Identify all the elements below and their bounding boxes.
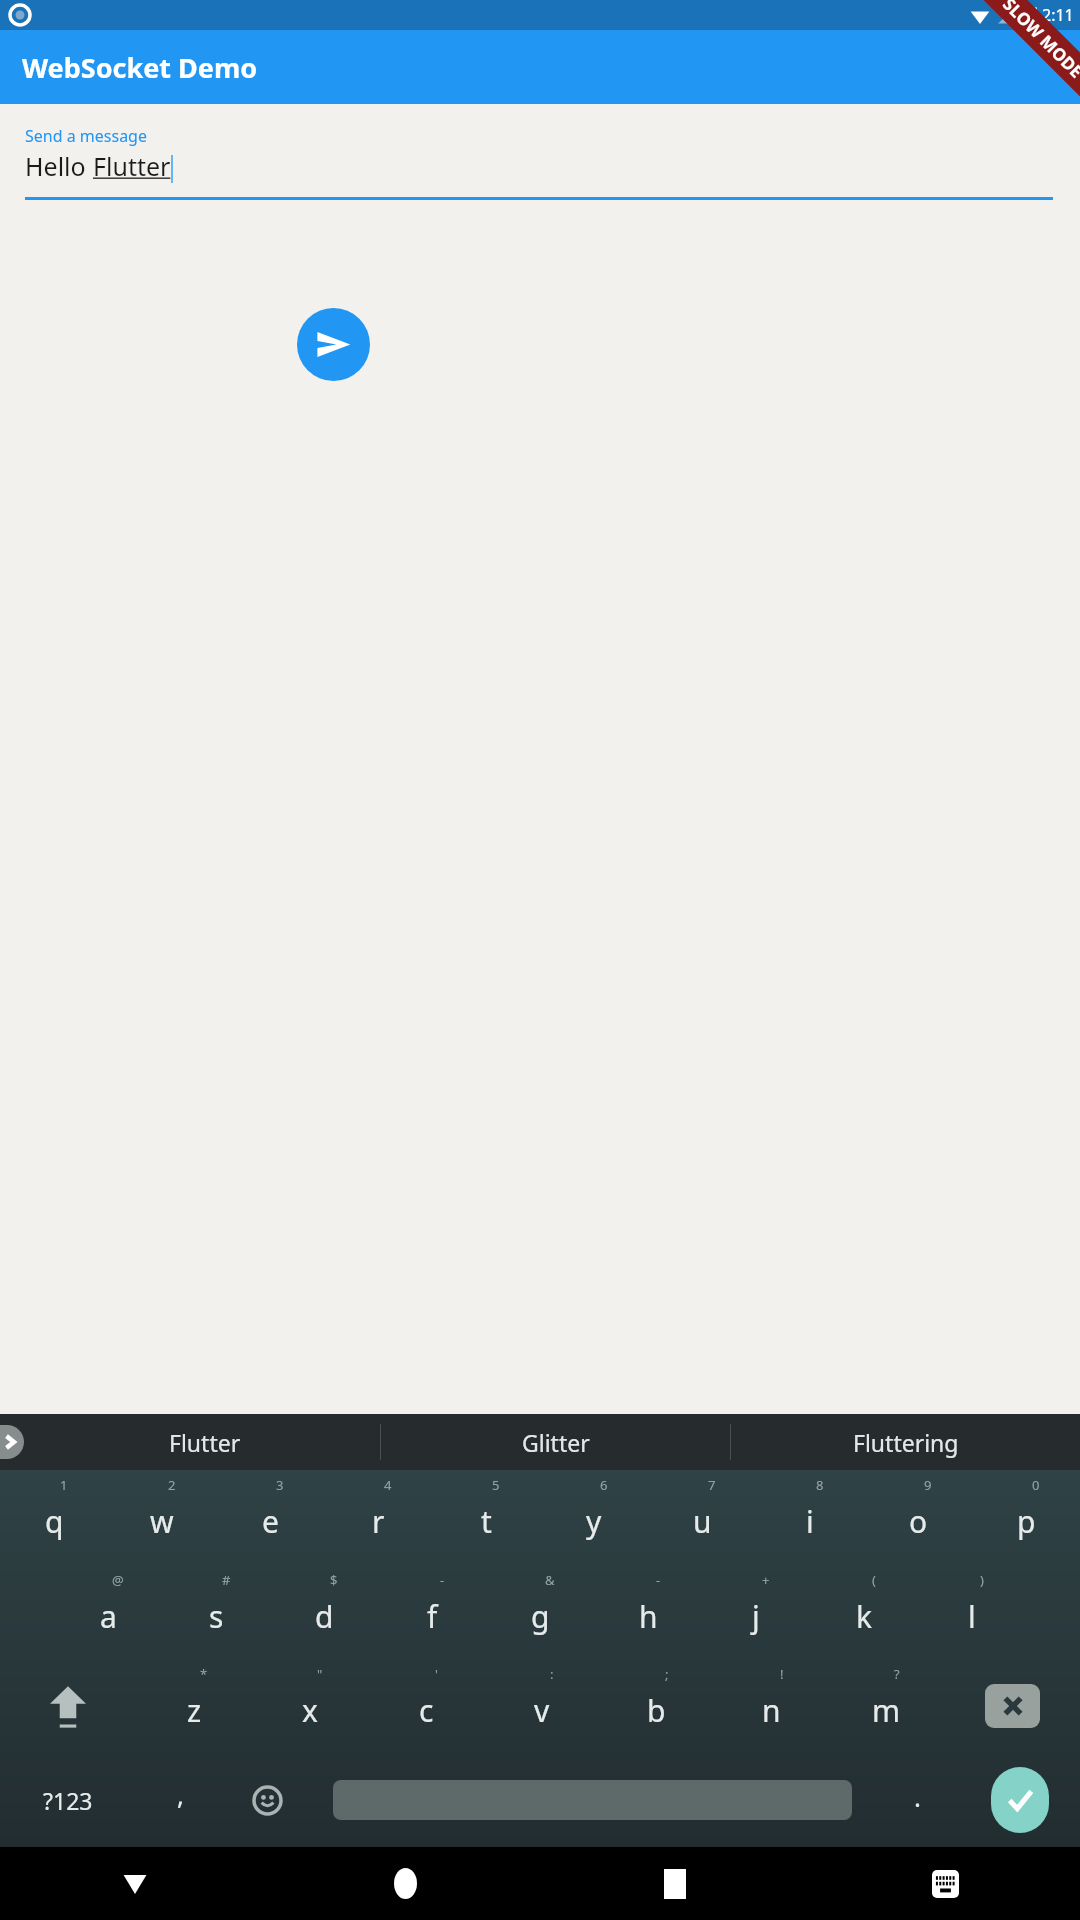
button[interactable]: Flutter	[30, 1414, 380, 1470]
staticText: Send a message	[25, 125, 147, 147]
button[interactable]: .	[874, 1753, 960, 1847]
staticText: e	[262, 1501, 279, 1542]
button[interactable]: 3	[216, 1470, 324, 1565]
staticText: z	[187, 1690, 202, 1731]
button[interactable]: -	[378, 1565, 486, 1659]
staticText: j	[752, 1596, 760, 1637]
button[interactable]: Expand suggestions	[0, 1425, 24, 1459]
button[interactable]: :	[484, 1659, 599, 1753]
staticText: v	[534, 1690, 550, 1731]
button[interactable]: Backspace	[944, 1659, 1080, 1753]
staticText: +	[762, 1571, 770, 1589]
button[interactable]: *	[136, 1659, 252, 1753]
staticText: b	[647, 1690, 666, 1731]
staticText: u	[693, 1501, 712, 1542]
button[interactable]: Recent apps	[540, 1847, 810, 1920]
staticText: &	[545, 1571, 555, 1589]
staticText: 2:11	[1042, 4, 1074, 26]
staticText: n	[762, 1690, 781, 1731]
staticText: :	[550, 1665, 554, 1683]
staticText: Hello	[25, 149, 93, 183]
button[interactable]: ?123	[0, 1753, 136, 1847]
staticText: h	[639, 1596, 658, 1637]
button[interactable]: )	[918, 1565, 1026, 1659]
staticText: ?	[894, 1665, 900, 1683]
staticText: w	[150, 1501, 174, 1542]
button[interactable]: ;	[599, 1659, 714, 1753]
button[interactable]: Emoji	[224, 1753, 310, 1847]
button[interactable]: 4	[324, 1470, 432, 1565]
staticText: #	[222, 1571, 231, 1589]
staticText: Glitter	[522, 1427, 590, 1458]
staticText: r	[372, 1501, 385, 1542]
button[interactable]: 6	[540, 1470, 648, 1565]
button[interactable]: Hide keyboard	[0, 1847, 270, 1920]
button[interactable]: +	[702, 1565, 810, 1659]
staticText: ;	[665, 1665, 669, 1683]
button[interactable]: Fluttering	[731, 1414, 1080, 1470]
staticText: c	[419, 1690, 434, 1731]
button[interactable]: "	[252, 1659, 368, 1753]
button[interactable]: '	[368, 1659, 484, 1753]
button[interactable]: 2	[108, 1470, 216, 1565]
staticText: $	[330, 1571, 338, 1589]
staticText: l	[968, 1596, 976, 1637]
button[interactable]: Switch keyboard	[810, 1847, 1080, 1920]
staticText: 2	[168, 1476, 176, 1494]
staticText: m	[872, 1690, 901, 1731]
staticText: '	[435, 1665, 438, 1683]
staticText: .	[914, 1779, 921, 1814]
button[interactable]: 5	[432, 1470, 540, 1565]
button[interactable]: Glitter	[381, 1414, 730, 1470]
staticText: x	[302, 1690, 318, 1731]
staticText: @	[112, 1571, 124, 1589]
staticText: a	[100, 1596, 117, 1637]
staticText: 8	[816, 1476, 824, 1494]
button[interactable]: 0	[972, 1470, 1080, 1565]
staticText: "	[317, 1665, 323, 1683]
staticText: )	[980, 1571, 984, 1589]
staticText: ?123	[43, 1785, 93, 1816]
button[interactable]: Send message	[297, 308, 370, 381]
staticText: 1	[60, 1476, 68, 1494]
button[interactable]: 7	[648, 1470, 756, 1565]
staticText: s	[209, 1596, 224, 1637]
button[interactable]: $	[270, 1565, 378, 1659]
staticText: k	[856, 1596, 873, 1637]
staticText: f	[427, 1596, 438, 1637]
staticText: 5	[492, 1476, 500, 1494]
staticText: (	[872, 1571, 876, 1589]
staticText: p	[1017, 1501, 1036, 1542]
staticText: Fluttering	[853, 1427, 959, 1458]
staticText: SLOW MODE	[998, 0, 1080, 83]
staticText: d	[315, 1596, 334, 1637]
button[interactable]: #	[162, 1565, 270, 1659]
button[interactable]: !	[714, 1659, 829, 1753]
button[interactable]: -	[594, 1565, 702, 1659]
staticText: ,	[177, 1777, 184, 1812]
button[interactable]: ,	[136, 1753, 224, 1847]
button[interactable]: 1	[0, 1470, 108, 1565]
staticText: !	[780, 1665, 784, 1683]
button[interactable]: @	[54, 1565, 162, 1659]
button[interactable]: Home	[270, 1847, 540, 1920]
staticText: q	[45, 1501, 64, 1542]
button[interactable]: 8	[756, 1470, 864, 1565]
button[interactable]: Shift	[0, 1659, 136, 1753]
staticText: 9	[924, 1476, 932, 1494]
staticText: i	[806, 1501, 814, 1542]
button[interactable]: &	[486, 1565, 594, 1659]
staticText: Flutter	[169, 1427, 241, 1458]
staticText: 6	[600, 1476, 608, 1494]
button[interactable]: Enter	[960, 1753, 1080, 1847]
staticText: 3	[276, 1476, 284, 1494]
button[interactable]: ?	[829, 1659, 944, 1753]
staticText: WebSocket Demo	[22, 49, 258, 86]
staticText: Flutter	[93, 149, 171, 183]
staticText: t	[481, 1501, 492, 1542]
staticText: g	[531, 1596, 550, 1637]
button[interactable]: 9	[864, 1470, 972, 1565]
button[interactable]: (	[810, 1565, 918, 1659]
staticText: -	[440, 1571, 445, 1589]
